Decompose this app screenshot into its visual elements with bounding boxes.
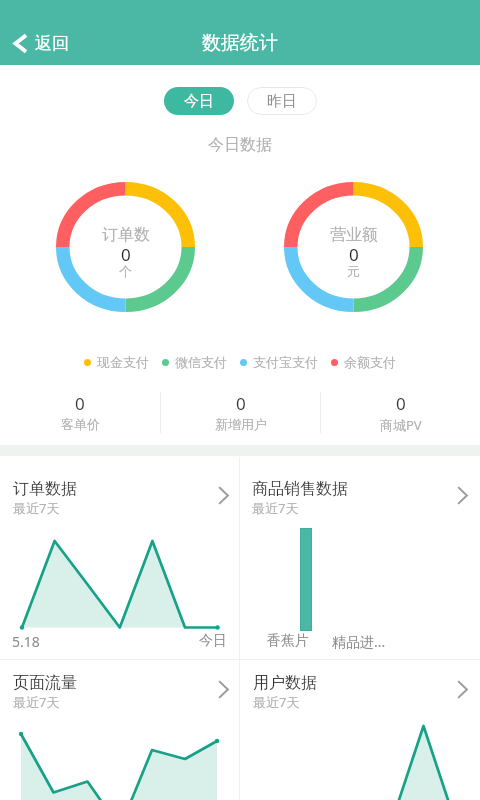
button[interactable]: 今日	[199, 632, 227, 650]
staticText: 最近7天	[13, 499, 60, 517]
button[interactable]: 精品进...	[332, 632, 386, 651]
button[interactable]: 商品销售数据	[240, 465, 480, 517]
button[interactable]: 商品销售数据详情	[447, 481, 477, 509]
staticText: 5.18	[12, 632, 40, 651]
staticText: 页面流量	[13, 673, 77, 693]
staticText: 个	[119, 263, 132, 279]
button[interactable]: 营业额	[284, 182, 423, 312]
button[interactable]: 订单数	[56, 182, 195, 312]
staticText: 订单数据	[13, 479, 77, 499]
staticText: 返回	[35, 33, 69, 54]
staticText: 商城PV	[380, 416, 422, 433]
button[interactable]: 现金支付	[84, 354, 149, 370]
button[interactable]: 5.18	[12, 632, 40, 651]
staticText: 余额支付	[344, 354, 396, 370]
button[interactable]: 支付宝支付	[240, 354, 318, 370]
button[interactable]: 用户数据详情	[447, 675, 477, 703]
staticText: 微信支付	[175, 354, 227, 370]
staticText: 0	[349, 243, 359, 266]
button[interactable]: 用户数据	[240, 659, 480, 711]
staticText: 新增用户	[215, 416, 267, 432]
staticText: 0	[75, 392, 85, 415]
staticText: 今日	[199, 632, 227, 650]
staticText: 最近7天	[253, 693, 300, 711]
button[interactable]: 0	[161, 391, 320, 433]
staticText: 现金支付	[97, 354, 149, 370]
button[interactable]: 订单数据	[0, 465, 240, 517]
button[interactable]: 今日	[164, 87, 234, 115]
button[interactable]: 0	[0, 391, 160, 433]
button[interactable]: 余额支付	[331, 354, 396, 370]
button[interactable]: 0	[321, 391, 480, 433]
staticText: 昨日	[267, 92, 297, 111]
staticText: 元	[347, 263, 360, 279]
staticText: 最近7天	[13, 693, 60, 711]
button[interactable]: 订单数据详情	[208, 481, 238, 509]
staticText: 0	[396, 392, 406, 415]
staticText: 客单价	[61, 416, 100, 432]
button[interactable]: 微信支付	[162, 354, 227, 370]
button[interactable]: 返回	[6, 25, 79, 62]
staticText: 数据统计	[202, 31, 278, 55]
staticText: 今日数据	[208, 135, 272, 155]
staticText: 商品销售数据	[252, 479, 348, 499]
staticText: 订单数	[102, 225, 150, 245]
staticText: 用户数据	[253, 673, 317, 693]
button[interactable]: 香蕉片	[267, 632, 309, 650]
staticText: 精品进...	[332, 632, 386, 651]
staticText: 0	[121, 243, 131, 266]
button[interactable]: 昨日	[247, 87, 317, 115]
staticText: 香蕉片	[267, 632, 309, 650]
staticText: 营业额	[330, 225, 378, 245]
staticText: 最近7天	[252, 499, 299, 517]
button[interactable]: 页面流量	[0, 659, 240, 711]
staticText: 今日	[184, 92, 214, 111]
staticText: 支付宝支付	[253, 354, 318, 370]
button[interactable]: 页面流量详情	[208, 675, 238, 703]
staticText: 0	[236, 392, 246, 415]
